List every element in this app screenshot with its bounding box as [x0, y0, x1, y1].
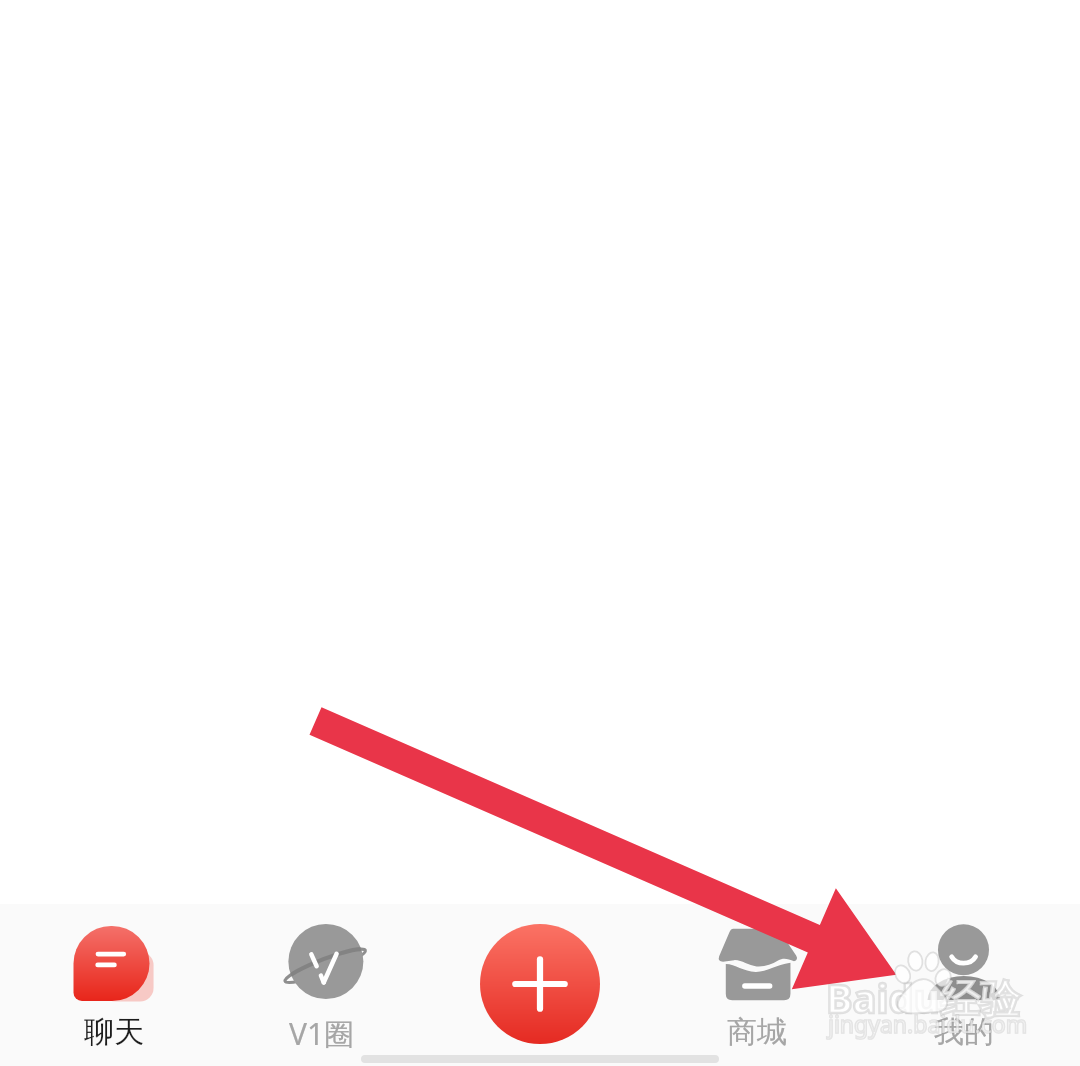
button[interactable]: Create new [480, 924, 600, 1044]
staticText: 商城 [727, 1013, 787, 1051]
button[interactable]: 商城 [648, 904, 864, 1066]
button[interactable]: 我的 [864, 904, 1080, 1066]
staticText: Baidu经验 [826, 970, 1020, 1025]
staticText: V1圈 [289, 1013, 355, 1054]
button[interactable]: 聊天 [0, 904, 216, 1066]
button[interactable]: V1圈 [216, 904, 432, 1066]
staticText: jingyan.baidu.com [828, 1008, 1028, 1039]
staticText: 聊天 [84, 1013, 144, 1051]
staticText: jingyan.baidu.com [828, 1008, 1028, 1039]
staticText: Baidu经验 [826, 970, 1020, 1025]
staticText: 我的 [934, 1013, 994, 1051]
